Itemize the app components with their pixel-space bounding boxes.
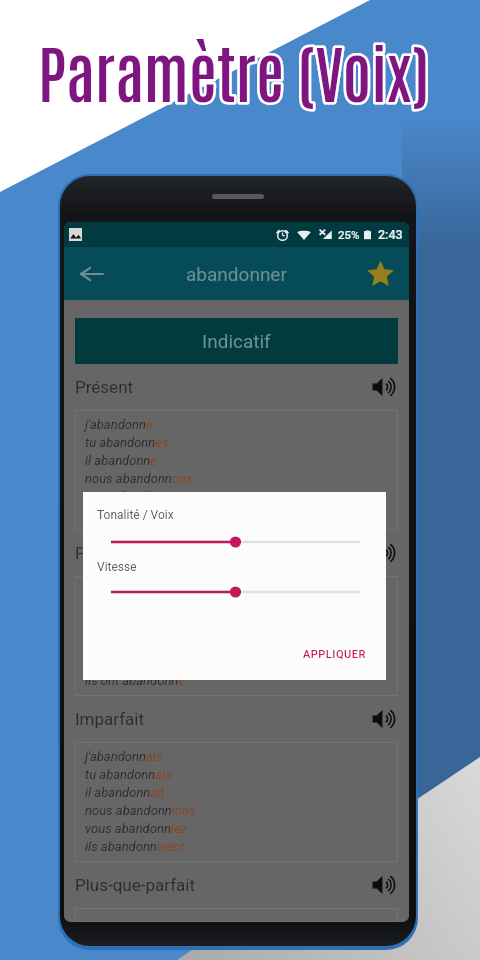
button[interactable]: Passé composé xyxy=(75,530,398,576)
staticText: Tonalité / Voix xyxy=(97,508,174,522)
staticText: j'abandonnais tu abandonnais il abandonn… xyxy=(85,749,196,855)
staticText: j'abandonne tu abandonnes il abandonne n… xyxy=(85,417,193,523)
staticText: Présent xyxy=(75,377,134,397)
staticText: 25% xyxy=(338,228,360,241)
staticText: APPLIQUER xyxy=(303,648,366,661)
button[interactable] xyxy=(111,585,360,599)
button[interactable]: APPLIQUER xyxy=(295,641,374,668)
button[interactable]: Favorite xyxy=(367,260,394,287)
staticText: abandonner xyxy=(186,263,287,285)
button[interactable]: Listen to Plus-que-parfait xyxy=(372,872,398,898)
staticText: Indicatif xyxy=(202,330,271,352)
button[interactable]: Listen to Présent xyxy=(372,374,398,400)
staticText: Plus-que-parfait xyxy=(75,875,195,895)
button[interactable] xyxy=(111,535,360,549)
button[interactable]: Indicatif xyxy=(75,318,398,364)
staticText: j'ai abandonné tu as abandonné il a aban… xyxy=(85,583,216,689)
staticText: Paramètre (Voix) xyxy=(38,29,430,111)
button[interactable]: Listen to Passé composé xyxy=(372,540,398,566)
button[interactable]: Imparfait xyxy=(75,696,398,742)
staticText: Passé composé xyxy=(75,543,197,563)
staticText: Imparfait xyxy=(75,709,145,729)
staticText: Vitesse xyxy=(97,560,137,574)
staticText: 2:43 xyxy=(378,227,403,242)
button[interactable]: Présent xyxy=(75,364,398,410)
button[interactable]: Listen to Imparfait xyxy=(372,706,398,732)
button[interactable]: Plus-que-parfait xyxy=(75,862,398,908)
staticText: Paramètre (Voix) xyxy=(38,29,430,111)
button[interactable]: Back xyxy=(76,258,108,290)
